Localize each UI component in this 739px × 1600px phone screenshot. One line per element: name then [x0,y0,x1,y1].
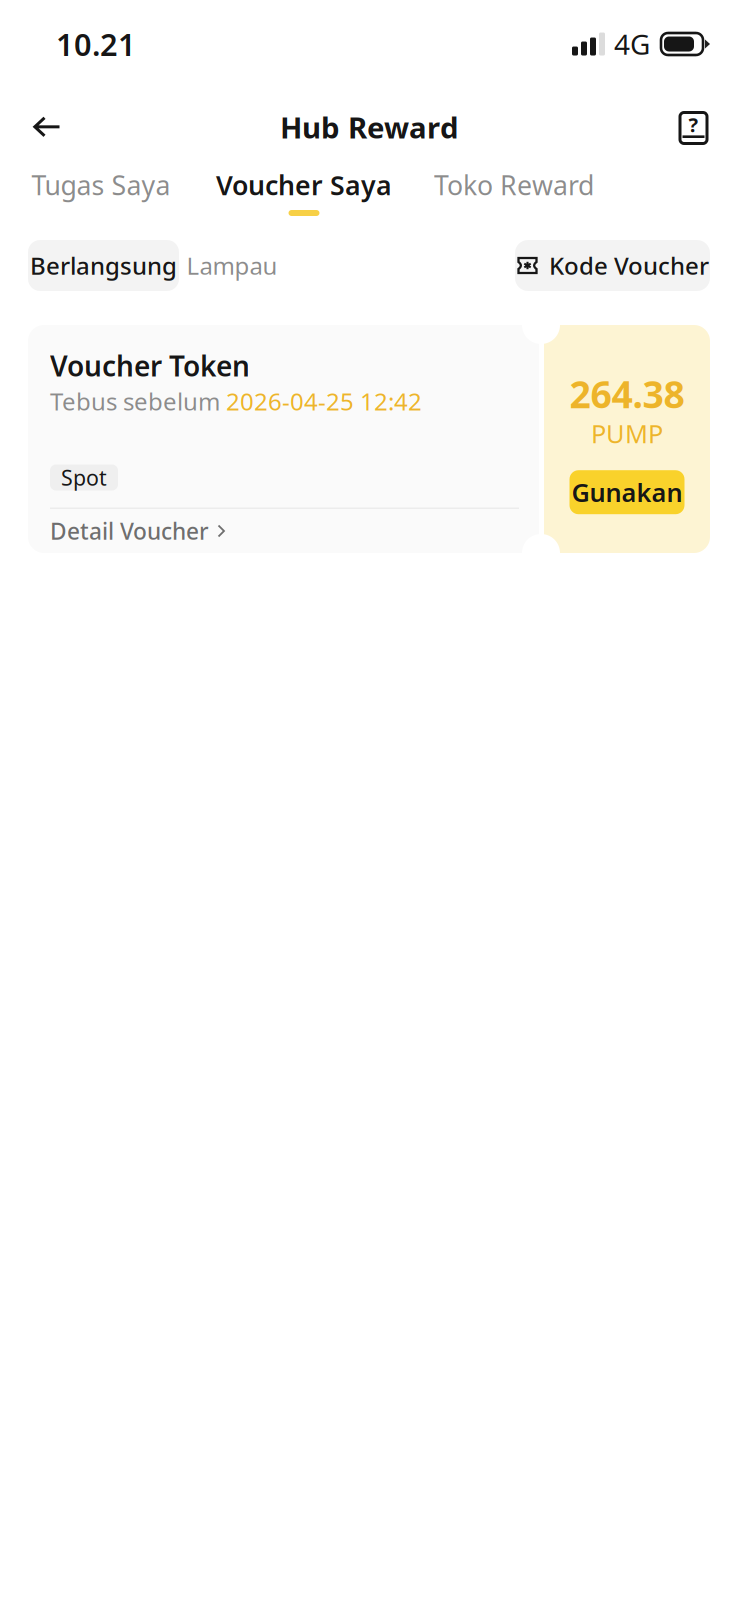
staticText: 2026-04-25 12:42 [226,385,422,417]
staticText: Toko Reward [434,167,594,203]
staticText: PUMP [591,417,663,450]
staticText: Tugas Saya [31,167,170,203]
staticText: Spot [61,463,107,492]
staticText: Hub Reward [280,107,459,146]
staticText: Berlangsung [30,250,177,281]
button[interactable]: Tugas Saya [0,166,196,202]
staticText: Tebus sebelum [50,385,226,417]
button[interactable]: Voucher Saya [196,166,411,216]
button[interactable]: Kode Voucher [515,240,710,291]
button[interactable]: Back [28,95,100,159]
staticText: Voucher Saya [216,167,392,203]
staticText: Voucher Token [50,347,250,384]
button[interactable]: Berlangsung [28,240,179,291]
button[interactable]: Gunakan [569,470,684,514]
staticText: ? [688,111,698,138]
staticText: Detail Voucher [50,516,209,546]
staticText: Lampau [186,250,277,281]
staticText: Gunakan [571,475,682,509]
staticText: Kode Voucher [549,250,709,281]
staticText: 10.21 [56,24,136,64]
button[interactable]: Lampau [179,240,285,291]
button[interactable]: Help [639,95,711,159]
button[interactable]: Toko Reward [411,166,617,202]
button[interactable]: Detail Voucher [50,509,226,553]
staticText: 264.38 [569,369,684,419]
staticText: 4G [614,25,650,63]
